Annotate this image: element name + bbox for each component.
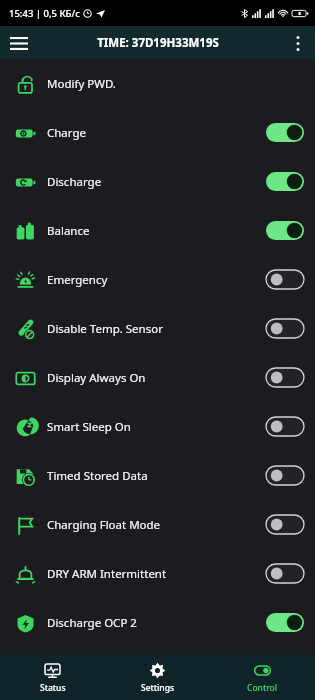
button[interactable]: Timed Stored Data <box>0 451 315 500</box>
button[interactable]: Charging Float Mode <box>0 500 315 549</box>
staticText: Extra Mode <box>47 664 109 680</box>
button[interactable]: Emergency <box>0 255 315 304</box>
button[interactable]: Toggle off <box>266 515 304 534</box>
button[interactable]: Toggle on <box>266 123 304 142</box>
button[interactable]: Charge <box>0 108 315 157</box>
staticText: Discharge OCP 2 <box>47 615 137 631</box>
button[interactable]: DRY ARM Intermittent <box>0 549 315 598</box>
button[interactable]: Toggle off <box>266 564 304 583</box>
staticText: DRY ARM Intermittent <box>47 566 167 582</box>
staticText: 15:43 | 0,5 КБ/с <box>9 7 80 20</box>
button[interactable]: Discharge OCP 2 <box>0 598 315 647</box>
staticText: Modify PWD. <box>47 76 116 92</box>
button[interactable]: More options <box>284 29 312 57</box>
button[interactable]: Toggle off <box>266 466 304 485</box>
button[interactable]: Control <box>210 655 315 700</box>
staticText: Charge <box>47 125 87 141</box>
button[interactable]: Disable Temp. Sensor <box>0 304 315 353</box>
button[interactable]: Discharge <box>0 157 315 206</box>
button[interactable]: Balance <box>0 206 315 255</box>
staticText: Status <box>40 682 66 694</box>
button[interactable]: Toggle on <box>266 172 304 191</box>
staticText: TIME: 37D19H33M19S <box>97 35 219 51</box>
button[interactable]: Status <box>0 655 105 700</box>
button[interactable]: Toggle on <box>266 662 304 681</box>
staticText: Smart Sleep On <box>47 419 131 435</box>
staticText: Disable Temp. Sensor <box>47 321 163 337</box>
button[interactable]: Modify PWD. <box>0 59 315 108</box>
staticText: Emergency <box>47 272 108 288</box>
staticText: Charging Float Mode <box>47 517 161 533</box>
button[interactable]: Toggle off <box>266 368 304 387</box>
button[interactable]: Smart Sleep On <box>0 402 315 451</box>
button[interactable]: Open navigation menu <box>4 28 34 58</box>
button[interactable]: Toggle on <box>266 221 304 240</box>
staticText: Timed Stored Data <box>47 468 148 484</box>
button[interactable]: Display Always On <box>0 353 315 402</box>
staticText: Control <box>247 682 278 694</box>
staticText: Display Always On <box>47 370 146 386</box>
button[interactable]: Toggle off <box>266 319 304 338</box>
button[interactable]: Toggle on <box>266 613 304 632</box>
staticText: Balance <box>47 223 90 239</box>
staticText: Discharge <box>47 174 102 190</box>
button[interactable]: Extra Mode <box>0 647 315 696</box>
button[interactable]: Toggle off <box>266 270 304 289</box>
button[interactable]: Settings <box>105 655 210 700</box>
button[interactable]: Toggle off <box>266 417 304 436</box>
staticText: Settings <box>141 682 175 694</box>
